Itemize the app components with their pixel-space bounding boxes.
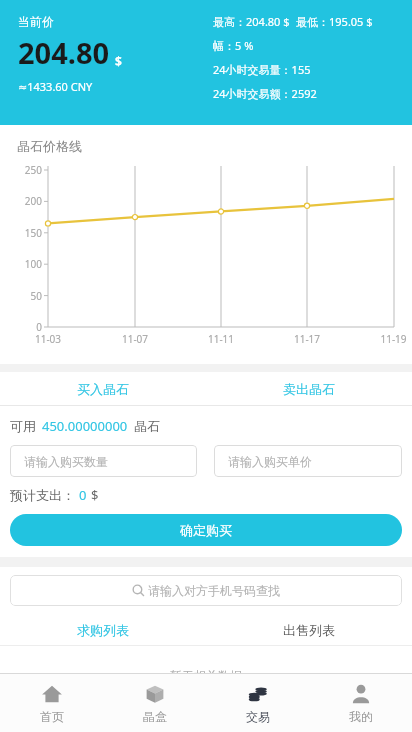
staticText: 24小时交易额：2592 (213, 86, 317, 101)
button[interactable]: 请输入购买单价 (214, 445, 402, 477)
staticText: 当前价 (18, 14, 54, 29)
staticText: 150 (8, 226, 42, 240)
staticText: 0 (8, 320, 42, 334)
staticText: 晶盒 (143, 709, 167, 724)
staticText: 出售列表 (283, 622, 335, 638)
staticText: $ (115, 53, 122, 69)
staticText: 0 (79, 486, 87, 504)
staticText: 我的 (349, 709, 373, 724)
button[interactable]: 卖出晶石 (206, 372, 412, 405)
button[interactable]: 确定购买 (10, 514, 402, 546)
staticText: 请输入购买单价 (228, 454, 312, 469)
button[interactable]: 出售列表 (206, 614, 412, 645)
button[interactable]: 首页 (0, 674, 103, 732)
staticText: 可用 (10, 418, 36, 434)
staticText: 预计支出： (10, 487, 75, 503)
staticText: 最高：204.80 $ (213, 14, 290, 29)
staticText: 204.80 (18, 33, 110, 72)
staticText: 11-19 (375, 332, 412, 346)
button[interactable]: 买入晶石 (0, 372, 206, 405)
button[interactable]: 交易 (206, 674, 309, 732)
staticText: 暂无相关数据 (170, 668, 242, 673)
button[interactable]: 求购列表 (0, 614, 206, 645)
staticText: 50 (8, 289, 42, 303)
staticText: 11-03 (29, 332, 67, 346)
staticText: 11-07 (116, 332, 154, 346)
staticText: 求购列表 (77, 622, 129, 638)
button[interactable]: 请输入购买数量 (10, 445, 197, 477)
staticText: 450.00000000 (42, 417, 128, 435)
staticText: 确定购买 (180, 522, 232, 538)
staticText: 首页 (40, 709, 64, 724)
staticText: 买入晶石 (77, 381, 129, 397)
staticText: 最低：195.05 $ (296, 14, 373, 29)
staticText: 晶石价格线 (17, 138, 82, 154)
staticText: 请输入对方手机号码查找 (148, 583, 280, 598)
staticText: 交易 (246, 709, 270, 724)
staticText: 250 (8, 163, 42, 177)
staticText: 11-11 (202, 332, 240, 346)
staticText: 卖出晶石 (283, 381, 335, 397)
button[interactable]: 晶盒 (103, 674, 206, 732)
button[interactable]: 我的 (309, 674, 412, 732)
staticText: 100 (8, 257, 42, 271)
button[interactable]: 请输入对方手机号码查找 (10, 575, 402, 606)
staticText: 24小时交易量：155 (213, 62, 311, 77)
staticText: ≈1433.60 CNY (18, 79, 93, 94)
staticText: 11-17 (288, 332, 326, 346)
staticText: 晶石 (134, 418, 160, 434)
staticText: $ (91, 486, 99, 504)
staticText: 幅：5 % (213, 38, 254, 53)
staticText: 200 (8, 194, 42, 208)
staticText: 请输入购买数量 (24, 454, 108, 469)
